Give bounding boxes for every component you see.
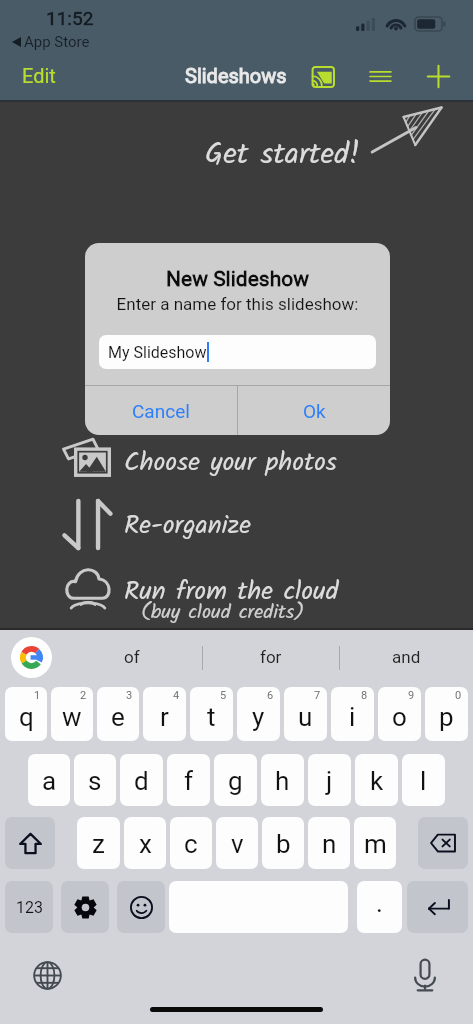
button[interactable]: My Slideshow [99,335,376,369]
button[interactable]: n [308,817,350,869]
staticText: l [420,766,427,796]
staticText: 3 [126,689,133,702]
button[interactable]: 4 [143,687,186,741]
staticText: Choose your photos [124,442,337,483]
button[interactable]: for [202,628,339,686]
staticText: 2 [80,689,87,702]
staticText: Ok [303,400,326,422]
button[interactable]: Edit [8,56,70,95]
staticText: r [160,702,169,732]
button[interactable]: x [124,817,166,869]
staticText: n [322,829,337,859]
staticText: 4 [173,689,180,702]
button[interactable]: 3 [97,687,139,741]
button[interactable]: Language [29,957,65,993]
staticText: b [276,829,291,859]
button[interactable]: c [170,817,212,869]
staticText: q [19,702,34,732]
button[interactable]: g [214,754,257,806]
button[interactable]: Ok [238,386,390,435]
staticText: h [275,766,290,796]
button[interactable]: Settings [61,881,109,933]
button[interactable]: 6 [237,687,280,741]
button[interactable]: of [62,628,202,686]
button[interactable]: Backspace [418,817,468,869]
staticText: 8 [361,689,368,702]
button[interactable]: j [308,754,351,806]
staticText: My Slideshow [108,343,207,362]
staticText: v [231,829,244,859]
staticText: i [349,702,356,732]
staticText: k [370,766,384,796]
staticText: p [439,702,454,732]
button[interactable]: d [120,754,163,806]
button[interactable]: 8 [331,687,374,741]
button[interactable]: Emoji [117,881,165,933]
button[interactable]: s [74,754,116,806]
button[interactable]: 123 [5,881,53,933]
staticText: t [207,702,216,732]
button[interactable]: k [355,754,398,806]
button[interactable]: 1 [5,687,47,741]
staticText: f [184,766,194,796]
button[interactable]: Cancel [85,386,237,435]
staticText: Re-organize [124,505,251,546]
button[interactable]: m [354,817,396,869]
staticText: 6 [267,689,274,702]
staticText: c [184,829,198,859]
button[interactable]: z [77,817,120,869]
button[interactable]: Shift [5,817,55,869]
button[interactable]: 5 [190,687,233,741]
button[interactable]: 0 [425,687,468,741]
button[interactable]: . [357,881,402,933]
staticText: App Store [24,33,90,51]
button[interactable]: a [28,754,70,806]
staticText: 11:52 [46,7,94,29]
button[interactable]: Add [418,56,458,97]
button[interactable]: Google [11,637,52,678]
staticText: y [252,702,265,732]
button[interactable]: 7 [284,687,327,741]
staticText: j [326,766,333,796]
staticText: New Slideshow [85,267,390,292]
staticText: for [260,647,282,667]
staticText: and [392,647,421,667]
staticText: 9 [408,689,415,702]
staticText: z [92,829,105,859]
button[interactable]: v [216,817,258,869]
staticText: 7 [314,689,321,702]
button[interactable]: Enter [407,881,468,933]
staticText: s [88,766,102,796]
button[interactable]: b [262,817,304,869]
staticText: 1 [34,689,41,702]
button[interactable]: h [261,754,304,806]
button[interactable]: Cast [300,56,343,97]
button[interactable]: and [339,628,473,686]
staticText: Slideshows [185,64,287,87]
button[interactable]: f [167,754,210,806]
button[interactable]: 2 [51,687,93,741]
button[interactable]: Voice input [407,957,443,993]
staticText: o [392,702,407,732]
staticText: (buy cloud credits) [141,597,305,629]
staticText: x [139,829,152,859]
staticText: of [124,647,140,667]
staticText: Get started! [205,131,361,179]
button[interactable]: 9 [378,687,421,741]
staticText: g [228,766,243,796]
staticText: Edit [22,64,56,87]
staticText: Run from the cloud [124,571,339,612]
button[interactable]: l [402,754,445,806]
staticText: . [376,888,383,918]
staticText: u [298,702,313,732]
staticText: e [111,702,125,732]
staticText: d [134,766,149,796]
staticText: m [364,829,387,859]
staticText: Enter a name for this slideshow: [85,294,390,314]
staticText: w [62,702,82,732]
staticText: a [42,766,57,796]
staticText: 0 [455,689,462,702]
button[interactable]: Menu [360,56,400,97]
staticText: 123 [16,898,43,917]
